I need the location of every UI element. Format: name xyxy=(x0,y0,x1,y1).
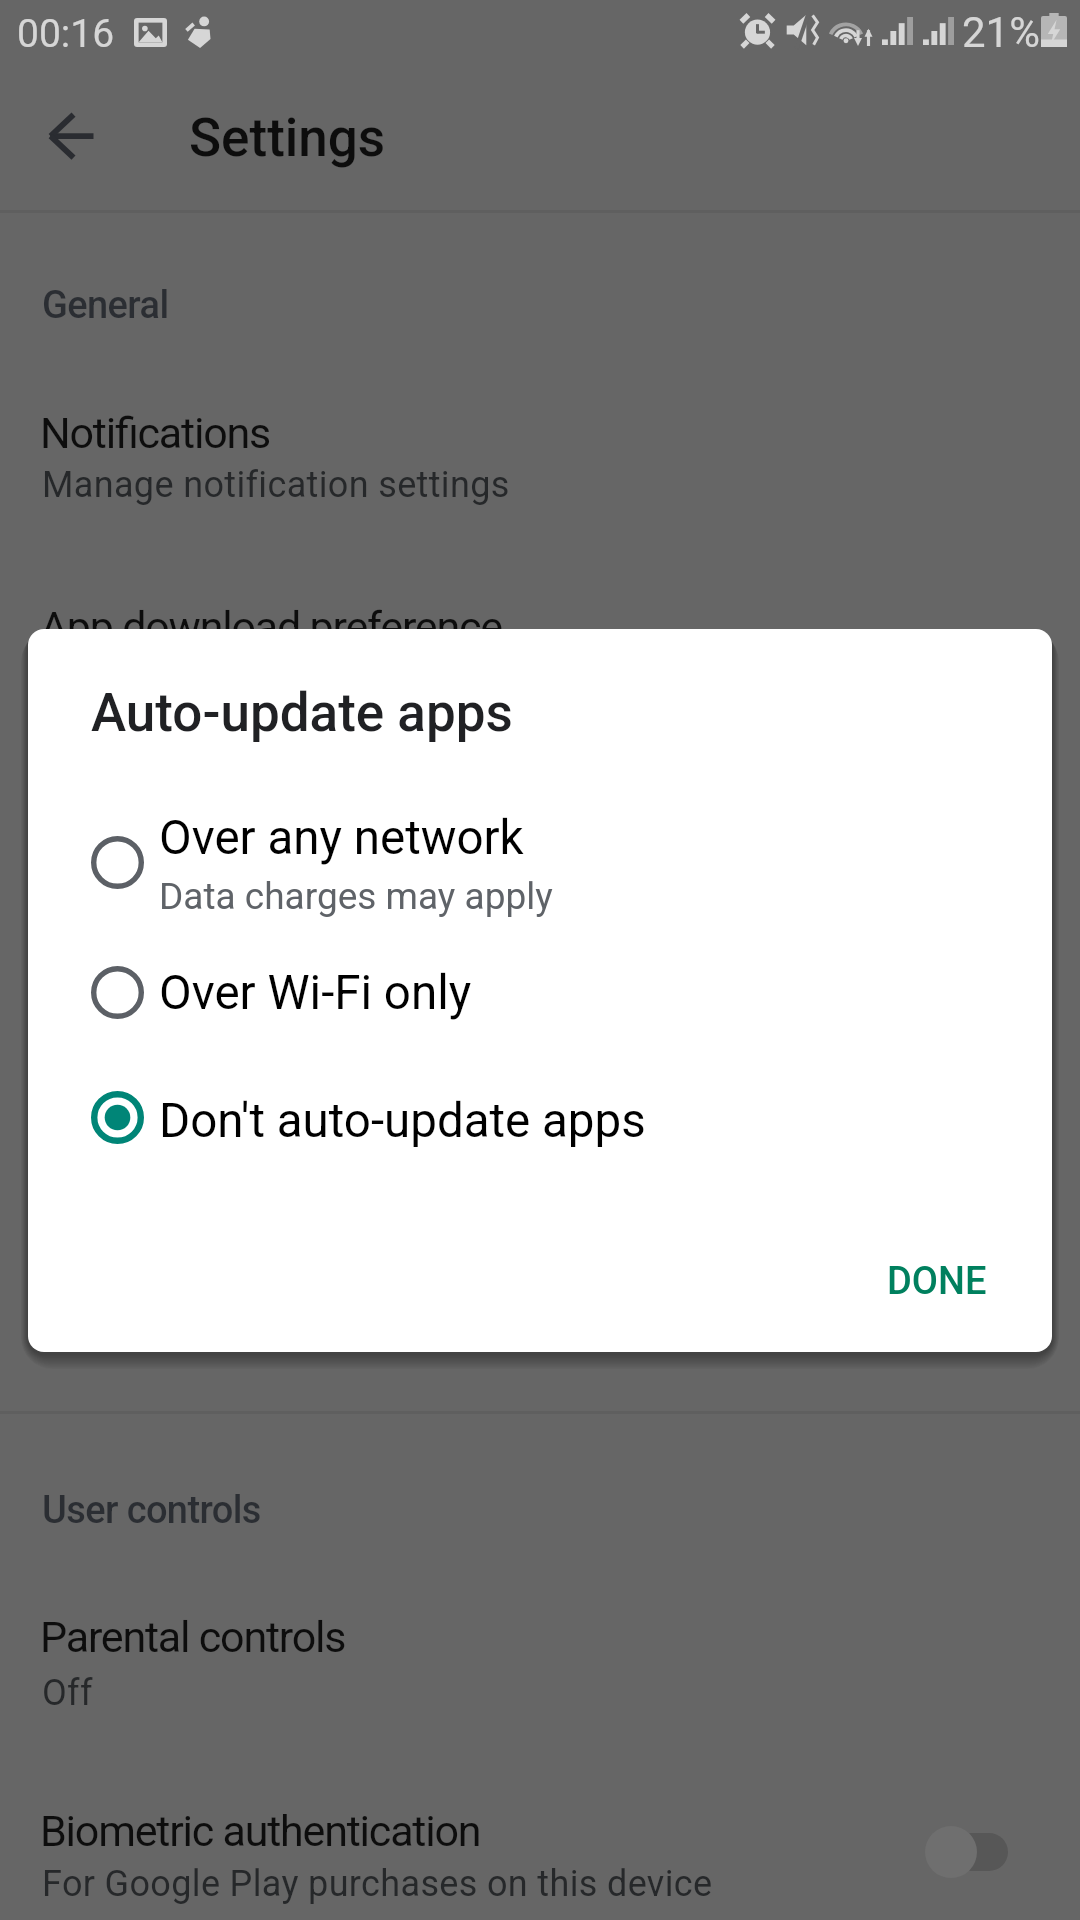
button[interactable]: Biometric authentication xyxy=(0,1772,1080,1912)
button[interactable]: Over any network xyxy=(28,809,1052,937)
button[interactable]: Back xyxy=(0,70,140,210)
staticText: General xyxy=(42,283,169,328)
staticText: For Google Play purchases on this device xyxy=(42,1863,713,1905)
staticText: Off xyxy=(42,1672,93,1714)
staticText: Data charges may apply xyxy=(159,875,553,918)
staticText: Manage notification settings xyxy=(42,464,510,506)
button[interactable]: DONE xyxy=(844,1231,1030,1331)
button[interactable]: App download preference xyxy=(0,568,1080,658)
staticText: DONE xyxy=(887,1259,987,1304)
button[interactable]: Biometric authentication toggle xyxy=(915,1818,1025,1888)
staticText: Over any network xyxy=(159,810,524,866)
staticText: 00:16 xyxy=(17,11,115,57)
staticText: Settings xyxy=(189,107,386,169)
button[interactable]: Don't auto-update apps xyxy=(28,1064,1052,1162)
staticText: Auto-update apps xyxy=(91,682,513,744)
button[interactable]: Notifications xyxy=(0,374,1080,514)
button[interactable]: Parental controls xyxy=(0,1578,1080,1718)
staticText: Don't auto-update apps xyxy=(159,1093,646,1149)
staticText: Biometric authentication xyxy=(40,1806,481,1856)
staticText: Notifications xyxy=(40,408,271,458)
staticText: User controls xyxy=(42,1488,261,1533)
staticText: App download preference xyxy=(40,602,502,652)
staticText: Over Wi-Fi only xyxy=(159,965,472,1021)
staticText: Parental controls xyxy=(40,1612,346,1662)
staticText: 21% xyxy=(962,8,1040,57)
button[interactable]: Over Wi-Fi only xyxy=(28,939,1052,1037)
